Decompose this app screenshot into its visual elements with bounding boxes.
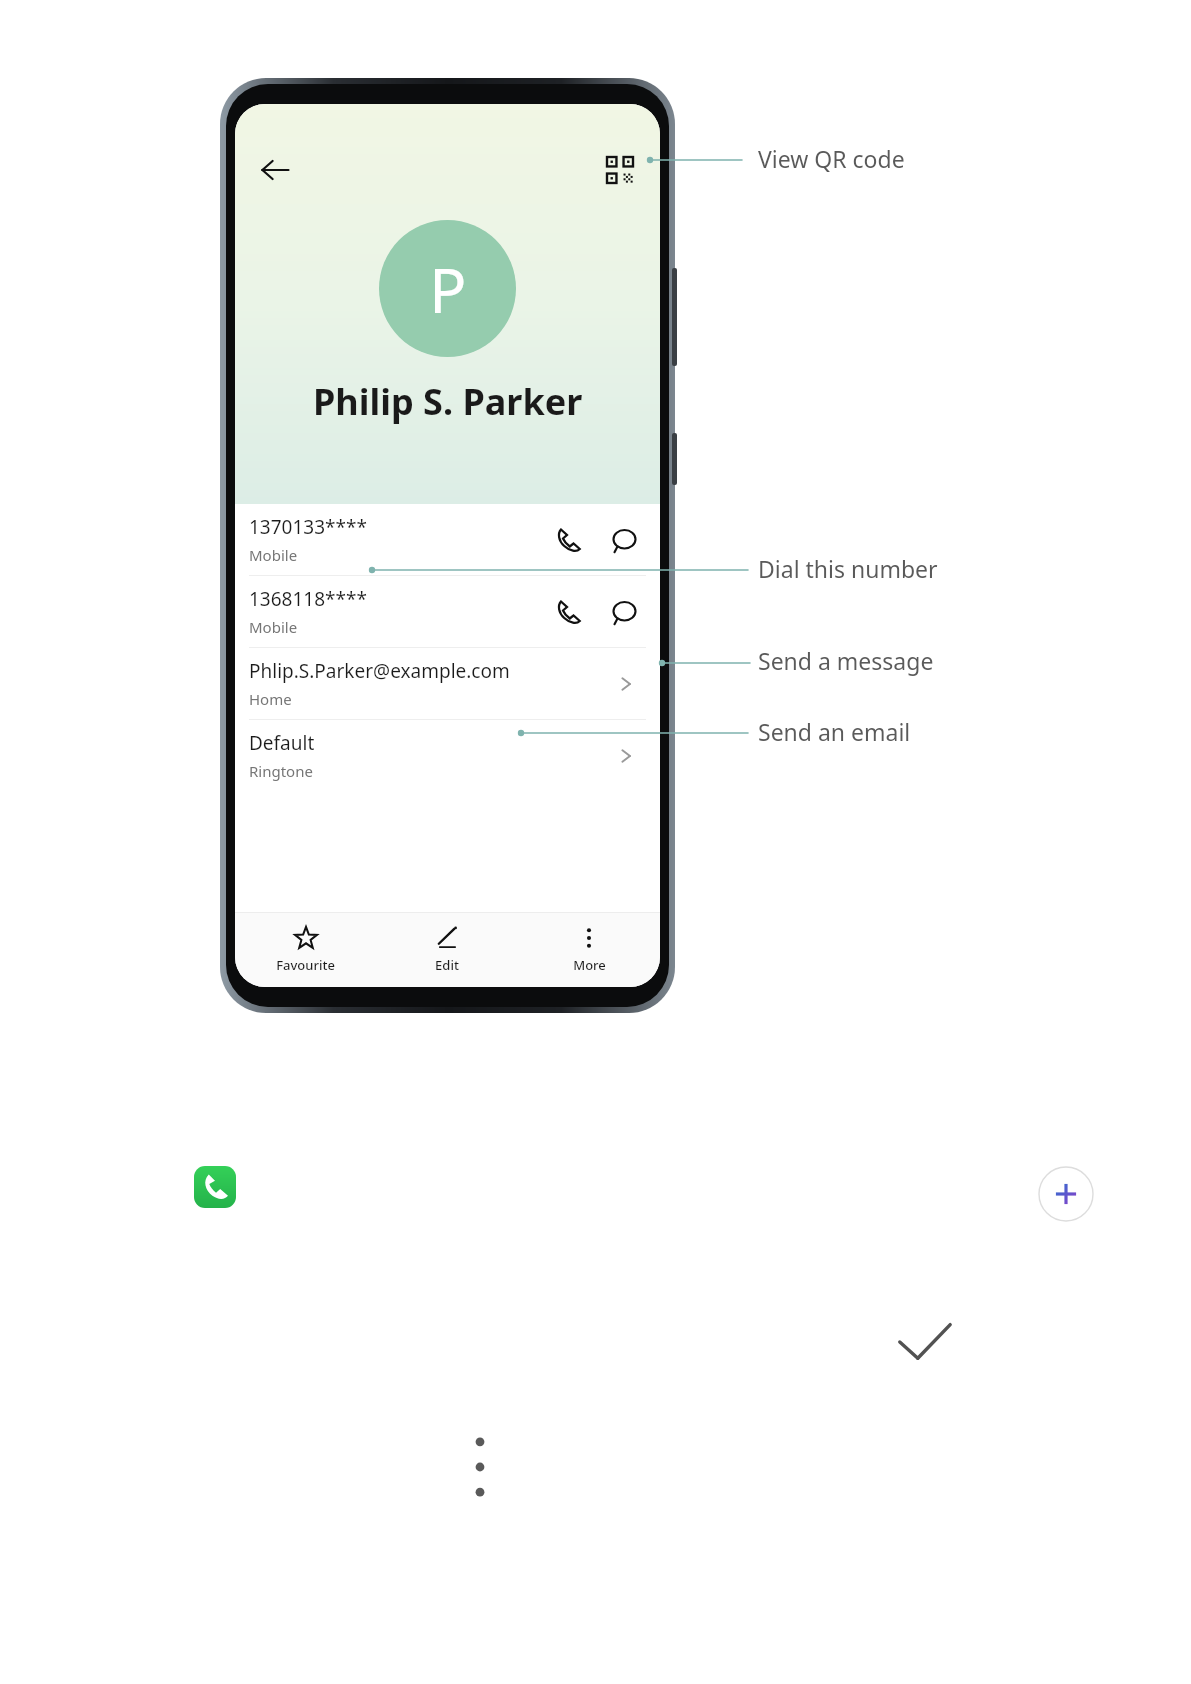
staticText: Philip S. Parker xyxy=(313,377,583,426)
staticText: Edit xyxy=(435,956,459,974)
button[interactable]: 1370133**** xyxy=(235,504,660,575)
button[interactable]: Phlip.S.Parker@example.com xyxy=(235,648,660,719)
button[interactable]: Favourite xyxy=(235,913,376,987)
staticText: 1368118**** xyxy=(249,586,367,612)
staticText: Default xyxy=(249,730,315,756)
staticText: P xyxy=(429,247,467,331)
button[interactable]: 1368118**** xyxy=(235,576,660,647)
staticText: Ringtone xyxy=(249,761,313,781)
staticText: Send a message xyxy=(758,645,934,676)
button[interactable]: Message xyxy=(602,518,646,562)
button[interactable]: View QR code xyxy=(594,144,646,196)
staticText: Send an email xyxy=(758,716,911,747)
button[interactable]: Default xyxy=(235,720,660,791)
staticText: Dial this number xyxy=(758,553,938,584)
button[interactable]: Call xyxy=(546,590,590,634)
other: Open xyxy=(606,664,646,704)
staticText: Home xyxy=(249,689,292,709)
button[interactable]: Back xyxy=(249,144,301,196)
button[interactable]: Phone app xyxy=(194,1166,236,1208)
staticText: View QR code xyxy=(758,143,905,174)
button[interactable]: More xyxy=(518,913,660,987)
staticText: 1370133**** xyxy=(249,514,367,540)
staticText: Mobile xyxy=(249,545,298,565)
staticText: Phlip.S.Parker@example.com xyxy=(249,658,510,684)
button[interactable]: Call xyxy=(546,518,590,562)
other: Open xyxy=(606,736,646,776)
staticText: Favourite xyxy=(276,956,335,974)
staticText: Mobile xyxy=(249,617,298,637)
button[interactable]: Message xyxy=(602,590,646,634)
button[interactable]: Add xyxy=(1038,1166,1094,1222)
button[interactable]: Edit xyxy=(376,913,518,987)
staticText: More xyxy=(573,956,606,974)
